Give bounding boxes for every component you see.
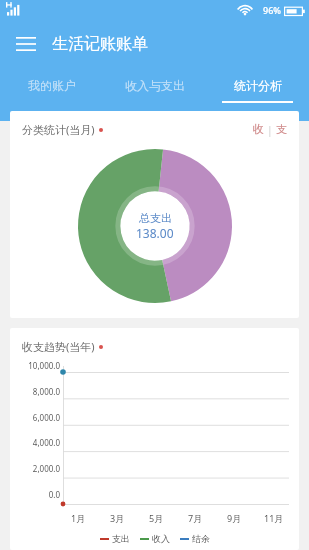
- staticText: 分类统计(当月): [22, 122, 95, 137]
- staticText: 6,000.0: [10, 412, 60, 423]
- staticText: 收: [253, 122, 264, 136]
- staticText: 11月: [264, 512, 284, 524]
- staticText: 9月: [227, 512, 242, 524]
- button[interactable]: 我的账户: [0, 67, 103, 103]
- staticText: 5月: [149, 512, 164, 524]
- staticText: 2,000.0: [10, 463, 60, 474]
- staticText: 支: [276, 122, 287, 136]
- staticText: 收入: [152, 533, 170, 544]
- staticText: 支出: [112, 533, 130, 544]
- button[interactable]: 收: [253, 122, 287, 137]
- staticText: 收入与支出: [125, 78, 185, 93]
- staticText: 我的账户: [28, 78, 76, 93]
- staticText: 3月: [110, 512, 125, 524]
- staticText: 7月: [188, 512, 203, 524]
- staticText: 8,000.0: [10, 386, 60, 397]
- staticText: |: [264, 122, 276, 137]
- staticText: 收支趋势(当年): [22, 339, 95, 354]
- staticText: 结余: [192, 533, 210, 544]
- staticText: 总支出: [139, 211, 172, 225]
- staticText: 生活记账账单: [52, 34, 148, 54]
- button[interactable]: 分类统计(当月): [10, 111, 299, 318]
- button[interactable]: 收支趋势(当年): [10, 328, 299, 550]
- staticText: 10,000.0: [10, 360, 60, 371]
- staticText: 0.0: [10, 489, 60, 500]
- staticText: 138.00: [136, 225, 174, 241]
- button[interactable]: 统计分析: [206, 67, 309, 103]
- staticText: 统计分析: [234, 78, 282, 93]
- button[interactable]: Menu: [0, 20, 52, 67]
- button[interactable]: 收入与支出: [103, 67, 206, 103]
- staticText: 4,000.0: [10, 437, 60, 448]
- staticText: 96%: [263, 4, 281, 16]
- staticText: 1月: [71, 512, 86, 524]
